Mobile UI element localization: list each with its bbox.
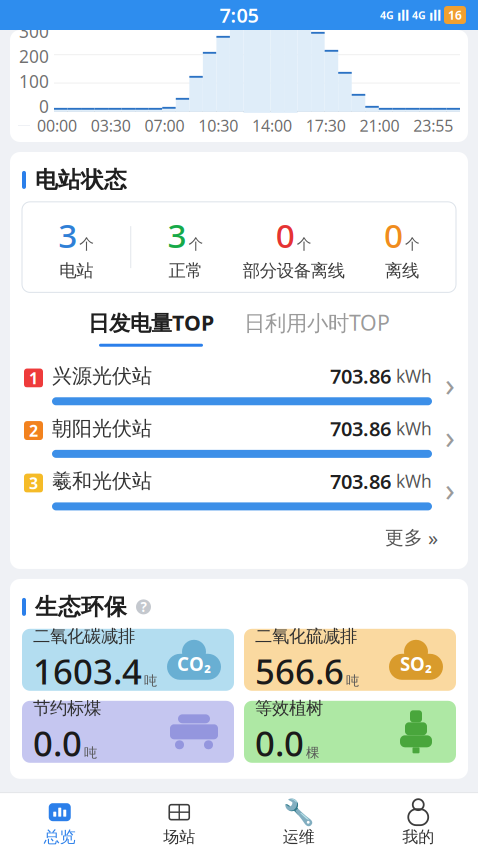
staticText: 吨	[144, 673, 157, 689]
staticText: 0	[384, 213, 403, 257]
staticText: 吨	[346, 673, 359, 689]
staticText: 17:30	[306, 115, 346, 136]
staticText: ıll	[429, 5, 441, 25]
staticText: 电站	[59, 260, 93, 281]
staticText: 吨	[84, 745, 97, 761]
staticText: 日发电量TOP	[88, 308, 214, 337]
staticText: 300	[19, 20, 49, 43]
staticText: ?	[140, 598, 146, 616]
staticText: 0.0	[33, 720, 82, 766]
staticText: 07:00	[144, 115, 184, 136]
staticText: 羲和光伏站	[52, 469, 152, 493]
staticText: 电站状态	[35, 166, 127, 194]
staticText: 00:00	[37, 115, 77, 136]
staticText: ›	[445, 363, 455, 405]
staticText: 1603.4	[33, 648, 142, 694]
staticText: 1	[29, 367, 38, 389]
staticText: 7:05	[219, 2, 258, 28]
button[interactable]: 3	[10, 464, 468, 514]
staticText: 节约标煤	[33, 698, 101, 719]
staticText: 3	[58, 213, 77, 257]
staticText: 14:00	[252, 115, 292, 136]
button[interactable]: 日发电量TOP	[88, 308, 214, 347]
staticText: 703.86	[330, 415, 391, 442]
staticText: 正常	[168, 260, 202, 281]
staticText: 总览	[44, 827, 76, 847]
staticText: 703.86	[330, 468, 391, 494]
staticText: 运维	[283, 827, 315, 847]
button[interactable]: 更多	[385, 520, 438, 555]
button[interactable]: 日利用小时TOP	[244, 308, 390, 347]
staticText: SO₂	[400, 651, 432, 676]
staticText: 0	[39, 95, 49, 118]
staticText: 部分设备离线	[243, 260, 345, 281]
staticText: 100	[19, 70, 49, 93]
staticText: 0.0	[255, 720, 304, 766]
staticText: 21:00	[359, 115, 399, 136]
button[interactable]: 1	[10, 359, 468, 409]
staticText: »	[428, 524, 438, 551]
staticText: CO₂	[177, 651, 211, 676]
staticText: 生态环保	[35, 593, 127, 621]
button[interactable]	[0, 799, 119, 848]
staticText: kWh	[391, 417, 432, 440]
staticText: 二氧化硫减排	[255, 626, 357, 647]
staticText: 4G	[412, 8, 426, 22]
staticText: 个	[405, 235, 420, 253]
staticText: 我的	[402, 827, 434, 847]
staticText: 日利用小时TOP	[244, 308, 390, 337]
staticText: 2	[29, 420, 38, 441]
staticText: 羲和	[188, 805, 250, 842]
staticText: 兴源	[255, 813, 289, 834]
staticText: 兴源光伏站	[52, 364, 152, 388]
staticText: 200	[19, 45, 49, 68]
staticText: 等效植树	[255, 698, 323, 719]
staticText: 4G	[380, 8, 394, 22]
staticText: ıll	[397, 5, 409, 25]
button[interactable]	[119, 799, 239, 848]
staticText: kWh	[391, 364, 432, 387]
staticText: 二氧化碳减排	[33, 626, 135, 647]
staticText: 566.6	[255, 648, 344, 694]
staticText: 离线	[385, 260, 419, 281]
staticText: ›	[445, 468, 455, 510]
staticText: 更多	[385, 526, 423, 549]
staticText: kWh	[391, 470, 432, 493]
button[interactable]: 🔧	[239, 799, 358, 848]
staticText: ›	[445, 415, 455, 458]
staticText: 23:55	[413, 115, 453, 136]
staticText: 个	[79, 235, 94, 253]
staticText: 个	[188, 235, 203, 253]
staticText: 16	[448, 7, 462, 23]
staticText: 场站	[163, 827, 195, 847]
staticText: 703.86	[330, 363, 391, 389]
staticText: 🔧	[283, 798, 315, 827]
staticText: 10:30	[198, 115, 238, 136]
staticText: 朝阳光伏站	[52, 416, 152, 441]
staticText: 3	[29, 472, 38, 494]
staticText: 03:30	[91, 115, 131, 136]
staticText: 棵	[306, 745, 319, 761]
staticText: 个	[297, 235, 312, 253]
button[interactable]: 2	[10, 411, 468, 462]
staticText: 3	[167, 213, 186, 257]
button[interactable]	[358, 799, 478, 848]
staticText: 0	[276, 213, 295, 257]
